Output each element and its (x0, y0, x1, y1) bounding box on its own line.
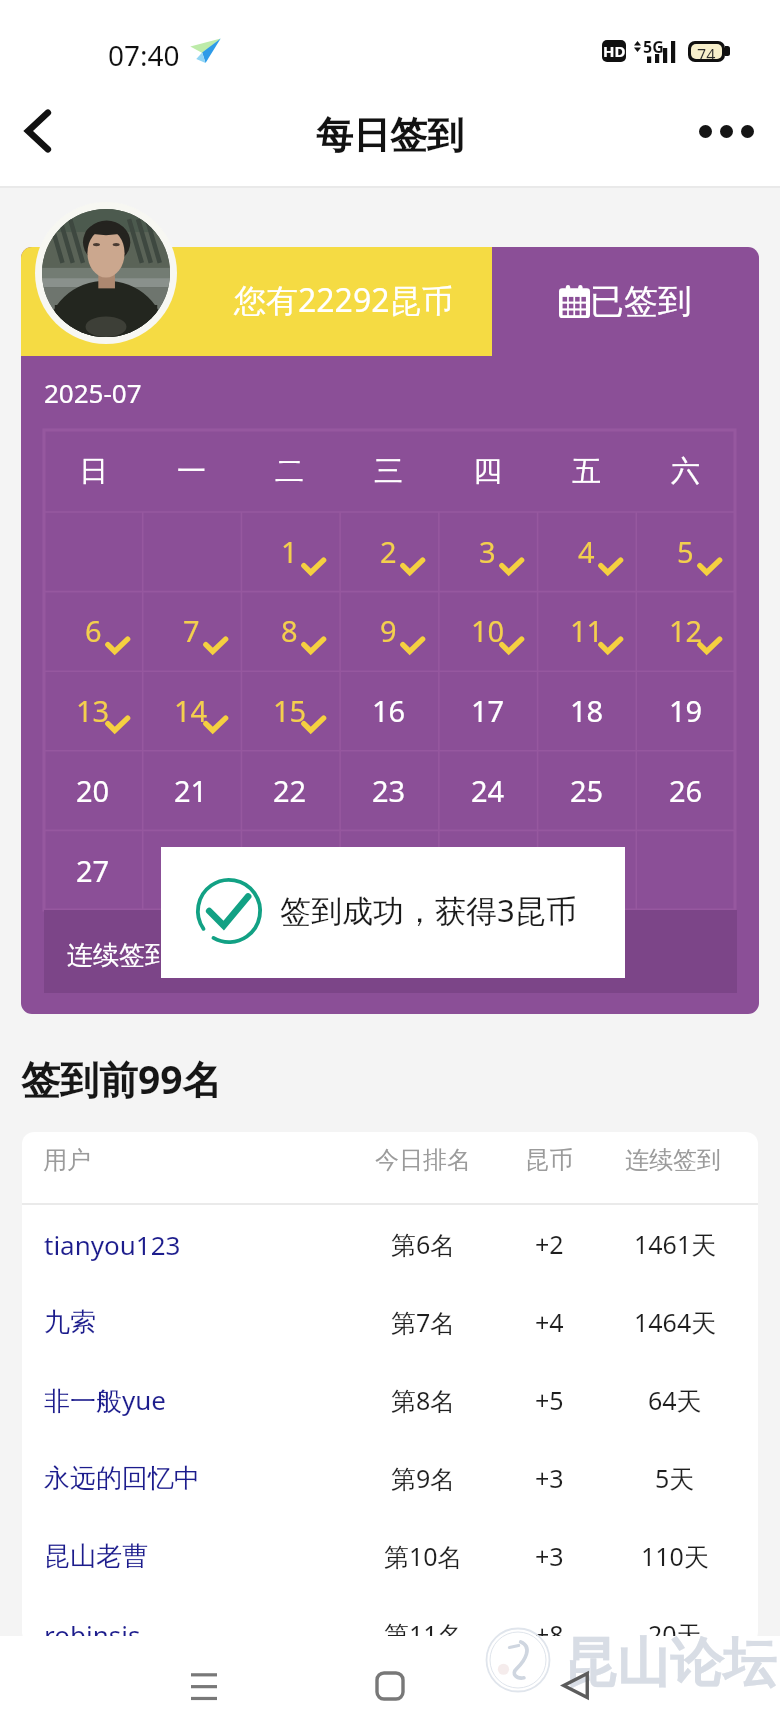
staticText: 三 (374, 453, 403, 490)
staticText: 110天 (641, 1539, 709, 1573)
staticText: +2 (535, 1227, 564, 1261)
staticText: 每日签到 (316, 112, 464, 159)
staticText: 已签到 (590, 280, 692, 323)
staticText: 1 (281, 532, 298, 571)
button[interactable]: 九索 (22, 1283, 758, 1361)
staticText: 一 (177, 453, 206, 490)
staticText: 9 (380, 611, 397, 650)
staticText: +3 (535, 1461, 564, 1495)
staticText: 第7名 (391, 1305, 456, 1339)
staticText: 签到成功，获得3昆币 (280, 889, 577, 931)
staticText: 第9名 (391, 1461, 456, 1495)
staticText: +3 (535, 1539, 564, 1573)
button[interactable]: 非一般yue (22, 1361, 758, 1439)
staticText: 5天 (655, 1461, 695, 1495)
staticText: 20天 (648, 1617, 702, 1644)
staticText: 第11名 (384, 1617, 463, 1644)
staticText: 28 (174, 851, 208, 890)
staticText: 20 (76, 771, 110, 810)
staticText: 24 (471, 771, 505, 810)
staticText: 永远的回忆中 (44, 1462, 200, 1495)
staticText: 64天 (648, 1383, 702, 1417)
staticText: 13 (76, 691, 110, 730)
staticText: 12 (669, 611, 703, 650)
staticText: 签到前99名 (21, 1052, 222, 1105)
staticText: robinsis (44, 1617, 141, 1644)
staticText: 26 (669, 771, 703, 810)
staticText: 您有22292昆币 (234, 278, 454, 322)
staticText: 5 (677, 532, 694, 571)
button[interactable]: More options (690, 95, 762, 167)
staticText: 23 (372, 771, 406, 810)
staticText: +8 (535, 1617, 564, 1644)
staticText: 二 (275, 453, 304, 490)
staticText: 五 (572, 453, 601, 490)
staticText: 7 (183, 611, 200, 650)
staticText: 5G (643, 36, 664, 58)
button[interactable]: Home (346, 1642, 433, 1729)
staticText: 今日排名 (375, 1145, 471, 1175)
staticText: 用户 (43, 1145, 91, 1175)
staticText: +4 (535, 1305, 564, 1339)
button[interactable]: Back (2, 95, 74, 167)
staticText: 18 (570, 691, 604, 730)
button[interactable]: tianyou123 (22, 1205, 758, 1283)
staticText: 8 (281, 611, 298, 650)
staticText: 昆币 (525, 1145, 573, 1175)
staticText: 19 (669, 691, 703, 730)
staticText: 25 (570, 771, 604, 810)
staticText: 74 (697, 44, 716, 59)
staticText: 连续签到 (625, 1145, 721, 1175)
staticText: 六 (671, 453, 700, 490)
staticText: 10 (471, 611, 505, 650)
staticText: 16 (372, 691, 406, 730)
staticText: 6 (85, 611, 102, 650)
staticText: 14 (174, 691, 208, 730)
staticText: 日 (79, 453, 108, 490)
staticText: 九索 (44, 1306, 96, 1339)
staticText: 非一般yue (44, 1382, 166, 1418)
staticText: tianyou123 (44, 1227, 181, 1262)
staticText: 第10名 (384, 1539, 463, 1573)
staticText: 22 (273, 771, 307, 810)
button[interactable]: 已签到 (492, 247, 758, 356)
staticText: 2 (380, 532, 397, 571)
staticText: 21 (174, 771, 208, 810)
staticText: 第6名 (391, 1227, 456, 1261)
staticText: 4 (578, 532, 595, 571)
staticText: 昆山论坛 (564, 1630, 776, 1697)
button[interactable]: robinsis (22, 1595, 758, 1644)
button[interactable]: Avatar (42, 209, 170, 337)
staticText: 07:40 (108, 36, 180, 74)
button[interactable]: Recent apps (160, 1642, 247, 1729)
button[interactable]: Back (532, 1642, 619, 1729)
staticText: 连续签到 15 天 (67, 936, 241, 972)
staticText: 11 (570, 611, 604, 650)
staticText: 15 (273, 691, 307, 730)
staticText: 昆山老曹 (44, 1540, 148, 1573)
staticText: 1464天 (634, 1305, 717, 1339)
staticText: 27 (76, 851, 110, 890)
staticText: 第8名 (391, 1383, 456, 1417)
staticText: 1461天 (634, 1227, 717, 1261)
staticText: +5 (535, 1383, 564, 1417)
staticText: 3 (479, 532, 496, 571)
button[interactable]: 昆山老曹 (22, 1517, 758, 1595)
staticText: HD (603, 41, 626, 61)
button[interactable]: 永远的回忆中 (22, 1439, 758, 1517)
staticText: 四 (473, 453, 502, 490)
staticText: 17 (471, 691, 505, 730)
staticText: 2025-07 (44, 375, 142, 410)
